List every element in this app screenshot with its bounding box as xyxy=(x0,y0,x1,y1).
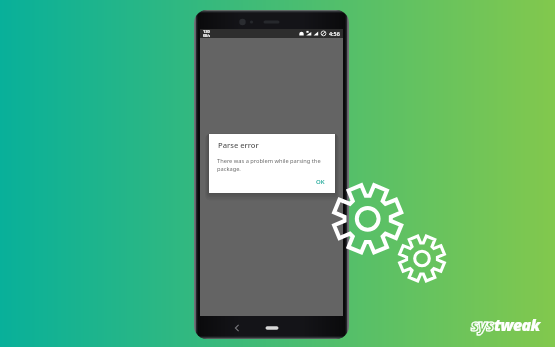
staticText: There was a problem while parsing the pa… xyxy=(217,157,325,173)
staticText: 130 xyxy=(203,29,210,34)
staticText: sys xyxy=(471,314,494,336)
button[interactable]: Home xyxy=(261,322,283,334)
staticText: 4:56 xyxy=(329,30,340,37)
button[interactable]: sys xyxy=(471,314,540,336)
staticText: KB/s xyxy=(203,34,211,38)
staticText: Parse error xyxy=(218,140,259,150)
staticText: tweak xyxy=(494,314,540,336)
staticText: OK xyxy=(316,178,325,186)
button[interactable]: OK xyxy=(313,176,328,188)
button[interactable]: Back xyxy=(230,321,244,335)
